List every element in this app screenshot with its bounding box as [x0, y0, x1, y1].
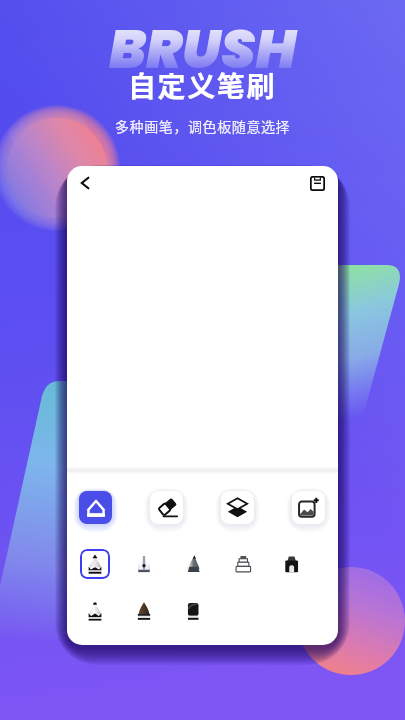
staticText: 自定义笔刷	[128, 65, 277, 106]
staticText: 多种画笔，调色板随意选择	[115, 116, 291, 136]
button[interactable]: Eraser	[150, 491, 183, 524]
button[interactable]: Ink bottle	[227, 549, 257, 579]
button[interactable]: Back	[72, 170, 98, 196]
button[interactable]: Flat brush	[178, 596, 208, 626]
button[interactable]: Save	[304, 170, 330, 196]
button[interactable]: Brush	[79, 491, 112, 524]
button[interactable]: Fountain pen	[129, 549, 159, 579]
button[interactable]: Cone brush	[178, 549, 208, 579]
staticText: BRUSH	[109, 11, 297, 87]
button[interactable]: Soft pencil	[80, 596, 110, 626]
button[interactable]: Round brush	[129, 596, 159, 626]
button[interactable]: Pencil	[80, 549, 110, 579]
button[interactable]: Add image	[292, 491, 325, 524]
button[interactable]: Layers	[221, 491, 254, 524]
button[interactable]: Marker	[276, 549, 306, 579]
